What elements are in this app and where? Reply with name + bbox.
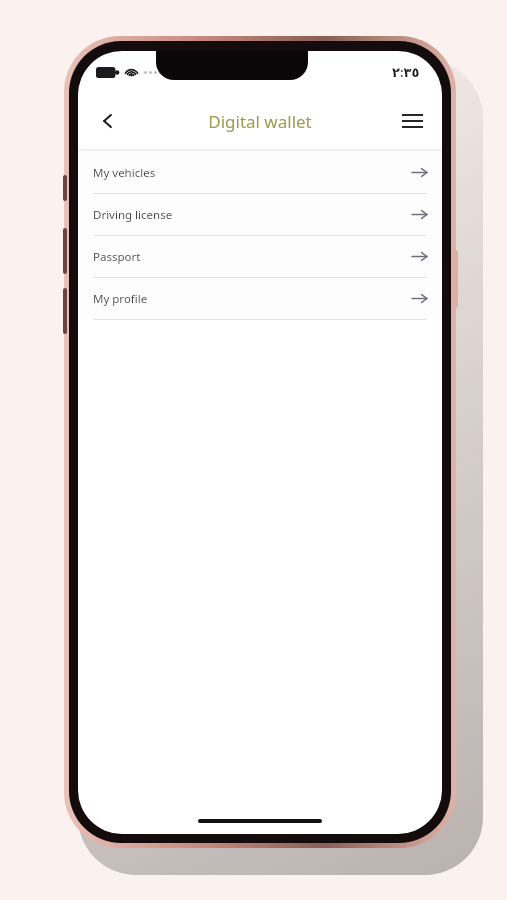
- staticText: My profile: [93, 291, 148, 307]
- staticText: Digital wallet: [208, 110, 312, 133]
- staticText: My vehicles: [93, 165, 156, 181]
- button[interactable]: My vehicles: [78, 152, 442, 193]
- button[interactable]: Menu: [390, 99, 434, 143]
- staticText: ٢:٣٥: [392, 63, 420, 81]
- button[interactable]: Passport: [78, 236, 442, 277]
- button[interactable]: My profile: [78, 278, 442, 319]
- staticText: Driving license: [93, 207, 173, 223]
- staticText: Passport: [93, 249, 141, 265]
- button[interactable]: Driving license: [78, 194, 442, 235]
- button[interactable]: Back: [86, 99, 130, 143]
